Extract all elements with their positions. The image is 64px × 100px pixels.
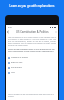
- button[interactable]: Right to vote: [6, 60, 58, 65]
- staticText: Learn as you go with explanations: [0, 4, 64, 8]
- staticText: Due process: [11, 66, 22, 69]
- button[interactable]: Profile: [54, 30, 58, 34]
- staticText: US Constitution & Politics: [16, 30, 49, 34]
- button[interactable]: Back: [6, 30, 10, 34]
- button[interactable]: Freedom of speech: [6, 55, 58, 60]
- staticText: 9:41: [8, 26, 13, 29]
- staticText: Tap an answer to see the explanation and…: [8, 93, 56, 97]
- staticText: Freedom of speech: [11, 56, 28, 59]
- button[interactable]: Trial: [6, 70, 58, 75]
- staticText: Right to vote: [11, 61, 23, 64]
- staticText: Which of the following rights is NOT pro…: [8, 48, 56, 52]
- button[interactable]: Due process: [6, 65, 58, 70]
- staticText: The Constitution of the United States is…: [8, 36, 56, 46]
- staticText: Trial: [11, 71, 15, 74]
